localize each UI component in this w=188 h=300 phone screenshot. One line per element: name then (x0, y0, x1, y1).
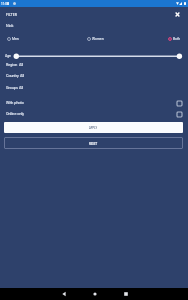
staticText: APPLY (89, 126, 98, 129)
staticText: Region (6, 63, 18, 67)
button[interactable]: Groups (0, 83, 188, 93)
button[interactable]: Region (0, 60, 188, 70)
staticText: Groups (6, 86, 18, 90)
button[interactable]: With photo (0, 98, 188, 108)
staticText: FILTER (6, 13, 17, 17)
staticText: Men (12, 37, 19, 41)
button[interactable]: Men (7, 33, 19, 45)
button[interactable]: Country (0, 71, 188, 81)
staticText: All (19, 63, 24, 67)
button[interactable]: Recents (110, 288, 141, 300)
button[interactable]: Close (172, 9, 183, 20)
staticText: RESET (89, 142, 98, 145)
button[interactable]: Women (87, 33, 104, 45)
staticText: Women (92, 37, 104, 41)
button[interactable]: Online only (0, 109, 188, 119)
button[interactable]: Both (168, 33, 181, 45)
staticText: 11:04 (1, 2, 9, 6)
staticText: All (20, 74, 25, 78)
staticText: All (19, 86, 24, 90)
button[interactable]: Back (48, 288, 79, 300)
staticText: Online only (6, 112, 25, 116)
button[interactable]: APPLY (4, 122, 183, 133)
button[interactable]: Home (79, 288, 110, 300)
staticText: Both (173, 37, 181, 41)
staticText: Age (5, 54, 11, 58)
staticText: Nick (6, 24, 14, 28)
staticText: With photo (6, 101, 24, 105)
button[interactable]: Nick (0, 20, 188, 30)
staticText: Country (6, 74, 19, 78)
button[interactable]: RESET (4, 137, 183, 149)
